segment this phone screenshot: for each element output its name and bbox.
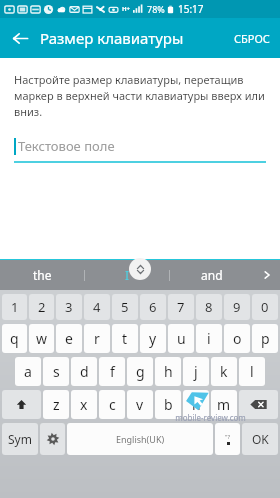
- button[interactable]: d: [71, 357, 97, 386]
- button[interactable]: a: [15, 357, 41, 386]
- button[interactable]: I: [85, 260, 169, 290]
- staticText: 7: [177, 298, 185, 316]
- staticText: Sym: [8, 431, 32, 447]
- staticText: g: [136, 362, 145, 381]
- staticText: 3: [65, 298, 73, 316]
- staticText: v: [136, 395, 144, 414]
- button[interactable]: i: [196, 324, 222, 353]
- button[interactable]: Keyboard settings: [40, 423, 65, 455]
- button[interactable]: 0: [252, 294, 278, 320]
- staticText: 8: [205, 298, 213, 316]
- staticText: d: [80, 362, 89, 381]
- staticText: w: [36, 329, 48, 348]
- staticText: t: [122, 329, 128, 348]
- button[interactable]: 5: [112, 294, 138, 320]
- button[interactable]: Space: [67, 423, 213, 455]
- button[interactable]: the: [0, 260, 84, 290]
- button[interactable]: Shift: [2, 390, 41, 419]
- button[interactable]: Resize keyboard: [129, 258, 151, 280]
- staticText: and: [201, 267, 223, 283]
- button[interactable]: СБРОС: [224, 18, 280, 58]
- button[interactable]: w: [29, 324, 54, 353]
- staticText: H+: [122, 5, 131, 13]
- button[interactable]: Sym: [2, 423, 38, 455]
- staticText: English(UK): [116, 433, 165, 445]
- staticText: e: [65, 329, 73, 348]
- button[interactable]: 2: [29, 294, 54, 320]
- button[interactable]: b: [155, 390, 181, 419]
- staticText: Текстовое поле: [18, 137, 115, 155]
- button[interactable]: 6: [140, 294, 166, 320]
- button[interactable]: p: [252, 324, 278, 353]
- staticText: i: [207, 329, 211, 348]
- button[interactable]: 3: [56, 294, 82, 320]
- button[interactable]: h: [155, 357, 181, 386]
- button[interactable]: q: [2, 324, 27, 353]
- staticText: x: [80, 395, 88, 414]
- button[interactable]: l: [239, 357, 265, 386]
- staticText: h: [164, 362, 173, 381]
- button[interactable]: x: [71, 390, 97, 419]
- button[interactable]: v: [127, 390, 153, 419]
- staticText: y: [149, 329, 157, 348]
- button[interactable]: k: [211, 357, 237, 386]
- staticText: s: [53, 362, 60, 381]
- staticText: 0: [261, 298, 269, 316]
- button[interactable]: s: [43, 357, 69, 386]
- staticText: n: [192, 395, 201, 414]
- button[interactable]: 1: [2, 294, 27, 320]
- staticText: 9: [233, 298, 241, 316]
- staticText: СБРОС: [234, 31, 270, 46]
- button[interactable]: j: [183, 357, 209, 386]
- staticText: q: [10, 329, 19, 348]
- staticText: 2: [38, 298, 46, 316]
- staticText: OK: [252, 431, 269, 447]
- button[interactable]: f: [99, 357, 125, 386]
- staticText: the: [33, 267, 52, 283]
- button[interactable]: Текстовое поле: [14, 137, 266, 163]
- staticText: I: [125, 267, 130, 283]
- staticText: "?: [225, 433, 231, 441]
- button[interactable]: More suggestions: [254, 260, 280, 290]
- staticText: l: [250, 362, 254, 381]
- button[interactable]: c: [99, 390, 125, 419]
- button[interactable]: g: [127, 357, 153, 386]
- staticText: mobile-review.com: [175, 412, 246, 423]
- staticText: Размер клавиатуры: [40, 28, 184, 48]
- staticText: f: [110, 362, 115, 381]
- staticText: 6: [149, 298, 157, 316]
- button[interactable]: y: [140, 324, 166, 353]
- staticText: 78%: [147, 3, 165, 15]
- button[interactable]: Back: [0, 18, 40, 58]
- button[interactable]: 9: [224, 294, 250, 320]
- staticText: z: [53, 395, 60, 414]
- button[interactable]: 4: [84, 294, 110, 320]
- button[interactable]: t: [112, 324, 138, 353]
- button[interactable]: and: [170, 260, 254, 290]
- staticText: a: [24, 362, 32, 381]
- button[interactable]: e: [56, 324, 82, 353]
- button[interactable]: 7: [168, 294, 194, 320]
- staticText: 1: [11, 298, 19, 316]
- button[interactable]: Period: [215, 423, 240, 455]
- staticText: b: [164, 395, 173, 414]
- button[interactable]: o: [224, 324, 250, 353]
- button[interactable]: OK: [242, 423, 278, 455]
- button[interactable]: m: [211, 390, 237, 419]
- button[interactable]: 8: [196, 294, 222, 320]
- button[interactable]: u: [168, 324, 194, 353]
- staticText: k: [220, 362, 228, 381]
- button[interactable]: Backspace: [239, 390, 278, 419]
- staticText: 4: [93, 298, 101, 316]
- button[interactable]: n: [183, 390, 209, 419]
- staticText: u: [177, 329, 186, 348]
- staticText: m: [217, 395, 231, 414]
- staticText: o: [233, 329, 242, 348]
- button[interactable]: r: [84, 324, 110, 353]
- staticText: p: [261, 329, 270, 348]
- button[interactable]: z: [43, 390, 69, 419]
- staticText: Настройте размер клавиатуры, перетащив м…: [14, 72, 266, 119]
- staticText: j: [194, 362, 198, 381]
- staticText: 15:17: [178, 2, 204, 16]
- staticText: r: [94, 329, 100, 348]
